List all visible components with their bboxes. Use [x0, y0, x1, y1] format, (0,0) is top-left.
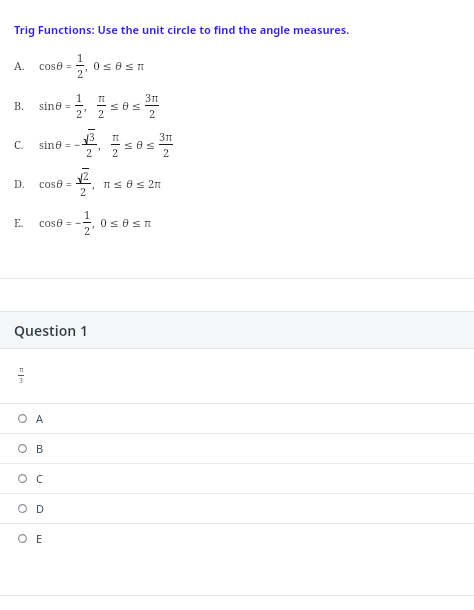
staticText: π: [98, 90, 106, 105]
staticText: C.: [14, 137, 24, 152]
button[interactable]: C: [0, 464, 474, 493]
staticText: ≤: [143, 137, 158, 152]
staticText: =: [63, 58, 75, 73]
staticText: , 0 ≤: [85, 58, 115, 73]
staticText: θ: [56, 215, 63, 230]
staticText: 2: [76, 106, 83, 121]
staticText: 2: [83, 169, 89, 183]
staticText: 3π: [145, 90, 159, 105]
staticText: 2: [98, 106, 105, 121]
staticText: θ: [122, 215, 129, 230]
staticText: , π ≤: [92, 176, 126, 191]
staticText: 3: [19, 376, 23, 386]
staticText: 2: [86, 145, 93, 160]
staticText: θ: [126, 176, 133, 191]
staticText: θ: [56, 58, 63, 73]
staticText: =: [62, 98, 74, 113]
staticText: = −: [62, 137, 81, 152]
staticText: π: [19, 365, 24, 375]
staticText: =: [63, 176, 75, 191]
staticText: 3: [89, 130, 95, 144]
staticText: B.: [14, 98, 24, 113]
staticText: ≤: [107, 98, 122, 113]
staticText: 2: [149, 106, 156, 121]
staticText: ,: [84, 98, 96, 113]
staticText: 2: [77, 66, 84, 81]
staticText: θ: [56, 176, 63, 191]
staticText: cos: [39, 215, 56, 230]
staticText: = −: [63, 215, 82, 230]
staticText: sin: [39, 98, 55, 113]
staticText: ≤: [129, 98, 144, 113]
button[interactable]: D: [0, 494, 474, 523]
staticText: ≤: [121, 137, 136, 152]
button[interactable]: B: [0, 434, 474, 463]
staticText: 2: [163, 145, 170, 160]
staticText: Question 1: [14, 321, 88, 340]
staticText: θ: [122, 98, 129, 113]
staticText: θ: [136, 137, 143, 152]
staticText: ,: [98, 137, 110, 152]
staticText: 2: [80, 184, 87, 199]
button[interactable]: A: [0, 404, 474, 433]
button[interactable]: E: [0, 524, 474, 553]
staticText: 1: [76, 90, 83, 105]
staticText: E: [36, 531, 43, 546]
staticText: ≤ π: [129, 215, 152, 230]
staticText: Trig Functions: Use the unit circle to f…: [14, 22, 350, 37]
staticText: B: [36, 441, 44, 456]
staticText: 2: [112, 145, 119, 160]
staticText: C: [36, 471, 43, 486]
staticText: cos: [39, 176, 56, 191]
staticText: E.: [14, 215, 24, 230]
staticText: 1: [84, 207, 91, 222]
staticText: θ: [115, 58, 122, 73]
staticText: A.: [14, 58, 25, 73]
staticText: θ: [55, 137, 62, 152]
staticText: θ: [55, 98, 62, 113]
staticText: 3π: [159, 129, 173, 144]
staticText: π: [112, 129, 120, 144]
staticText: cos: [39, 58, 56, 73]
staticText: 1: [77, 50, 84, 65]
staticText: sin: [39, 137, 55, 152]
staticText: , 0 ≤: [92, 215, 122, 230]
staticText: 2: [84, 223, 91, 238]
staticText: ≤ 2π: [133, 176, 162, 191]
staticText: ≤ π: [122, 58, 145, 73]
staticText: D.: [14, 176, 25, 191]
staticText: D: [36, 501, 45, 516]
staticText: A: [36, 411, 44, 426]
